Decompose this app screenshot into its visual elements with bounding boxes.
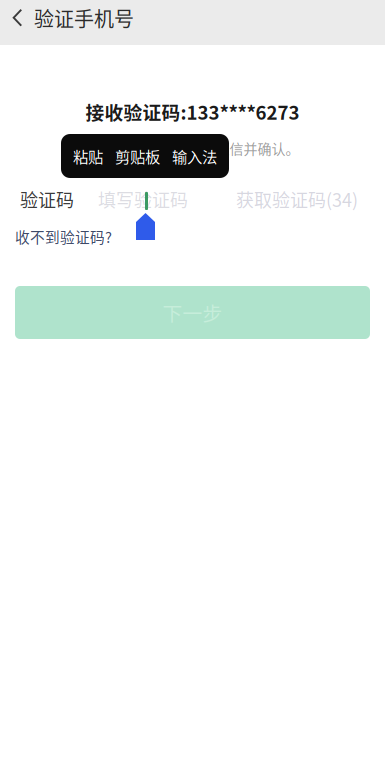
button[interactable]: 输入法 xyxy=(166,134,227,178)
staticText: 剪贴板 xyxy=(115,145,160,167)
staticText: 验证码已发送,请查收短信并确认。 xyxy=(85,138,299,158)
button[interactable]: 下一步 xyxy=(15,286,370,339)
button[interactable]: 返回 xyxy=(0,0,28,36)
staticText: 输入法 xyxy=(172,145,217,167)
staticText: 收不到验证码? xyxy=(15,226,112,247)
button[interactable]: 剪贴板 xyxy=(109,134,166,178)
staticText: 接收验证码:133****6273 xyxy=(85,98,299,125)
staticText: 获取验证码(34) xyxy=(236,186,358,212)
button[interactable]: 填写验证码 xyxy=(74,186,228,212)
button[interactable]: 收不到验证码? xyxy=(15,226,112,247)
staticText: 填写验证码 xyxy=(98,186,188,212)
staticText: 下一步 xyxy=(162,298,222,327)
staticText: 验证码 xyxy=(20,186,74,212)
button[interactable]: 获取验证码(34) xyxy=(236,186,358,212)
button[interactable]: 粘贴 xyxy=(63,134,109,178)
staticText: 验证手机号 xyxy=(34,3,134,32)
staticText: 粘贴 xyxy=(73,145,103,167)
